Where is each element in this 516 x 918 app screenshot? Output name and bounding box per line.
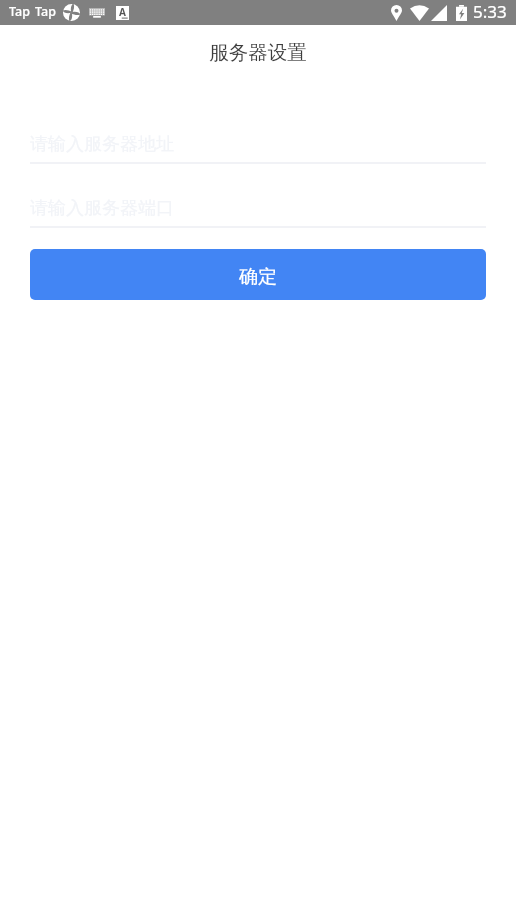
button[interactable]: 确定 <box>30 249 486 300</box>
other: Mobile signal <box>431 5 447 21</box>
other: App <box>63 4 80 21</box>
staticText: A <box>119 5 126 19</box>
staticText: 请输入服务器地址 <box>30 133 174 156</box>
other: Location <box>391 5 402 21</box>
staticText: 请输入服务器端口 <box>30 197 174 220</box>
staticText: 5:33 <box>473 0 507 23</box>
other: Input method <box>116 6 129 20</box>
other: Keyboard <box>89 8 105 18</box>
button[interactable]: 请输入服务器端口 <box>30 195 486 228</box>
other: Battery charging <box>456 5 467 21</box>
staticText: 确定 <box>239 265 277 289</box>
other: Wi-Fi <box>410 5 429 21</box>
staticText: Tap <box>35 3 56 20</box>
staticText: 服务器设置 <box>209 40 307 65</box>
staticText: Tap <box>9 3 30 20</box>
button[interactable]: 请输入服务器地址 <box>30 131 486 164</box>
